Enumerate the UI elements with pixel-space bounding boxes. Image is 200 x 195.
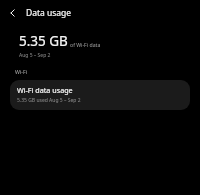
staticText: 5.35 GB <box>19 32 68 50</box>
staticText: Wi-Fi data usage <box>17 85 73 95</box>
staticText: Data usage <box>26 7 72 19</box>
staticText: of Wi-Fi data <box>70 41 101 48</box>
staticText: Wi-Fi <box>15 68 28 75</box>
button[interactable]: Back <box>4 4 22 22</box>
staticText: Aug 5 – Sep 2 <box>19 52 51 59</box>
button[interactable]: Wi-Fi data usage <box>10 80 190 110</box>
staticText: 5.35 GB used Aug 5 – Sep 2 <box>17 97 81 104</box>
